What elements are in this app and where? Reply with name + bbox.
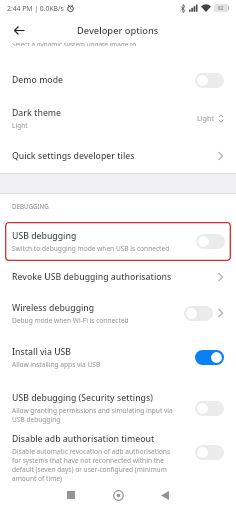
staticText: Quick settings developer tiles xyxy=(12,150,135,162)
button[interactable]: Dark theme xyxy=(0,98,236,138)
staticText: Demo mode xyxy=(12,74,64,86)
button[interactable]: Disable adb authorisation timeout xyxy=(0,430,236,486)
button[interactable] xyxy=(109,486,127,504)
button[interactable]: Demo mode xyxy=(0,60,236,100)
staticText: Select a dynamic system update image to … xyxy=(12,43,139,46)
staticText: Dark theme xyxy=(12,107,62,119)
staticText: 82 xyxy=(218,5,224,12)
button[interactable]: USB debugging (Security settings) xyxy=(0,386,236,430)
staticText: Disable adb authorisation timeout xyxy=(12,433,155,445)
staticText: Light xyxy=(12,121,28,130)
staticText: Developer options xyxy=(77,24,159,37)
staticText: USB debugging xyxy=(12,230,77,242)
staticText: Light xyxy=(197,113,215,123)
staticText: Debug mode when Wi-Fi is connected xyxy=(12,316,129,325)
staticText: DEBUGGING xyxy=(12,202,49,210)
staticText: Wireless debugging xyxy=(12,302,95,314)
button[interactable]: USB debugging xyxy=(5,222,231,261)
staticText: Switch to debugging mode when USB is con… xyxy=(12,244,170,253)
button[interactable] xyxy=(62,486,80,504)
staticText: Allow installing apps via USB xyxy=(12,360,101,369)
button[interactable] xyxy=(14,26,25,35)
staticText: Disable automatic revocation of adb auth… xyxy=(12,447,171,483)
staticText: Install via USB xyxy=(12,346,72,358)
staticText: Allow granting permissions and simulatin… xyxy=(12,406,173,424)
button[interactable]: Quick settings developer tiles xyxy=(0,136,236,176)
staticText: USB debugging (Security settings) xyxy=(12,392,153,404)
button[interactable]: Wireless debugging xyxy=(0,293,236,333)
button[interactable]: Install via USB xyxy=(0,339,236,375)
button[interactable]: Revoke USB debugging authorisations xyxy=(0,259,236,295)
staticText: 2:44 PM | 0.0KB/s xyxy=(7,4,64,13)
staticText: Revoke USB debugging authorisations xyxy=(12,271,172,283)
button[interactable] xyxy=(156,486,174,504)
